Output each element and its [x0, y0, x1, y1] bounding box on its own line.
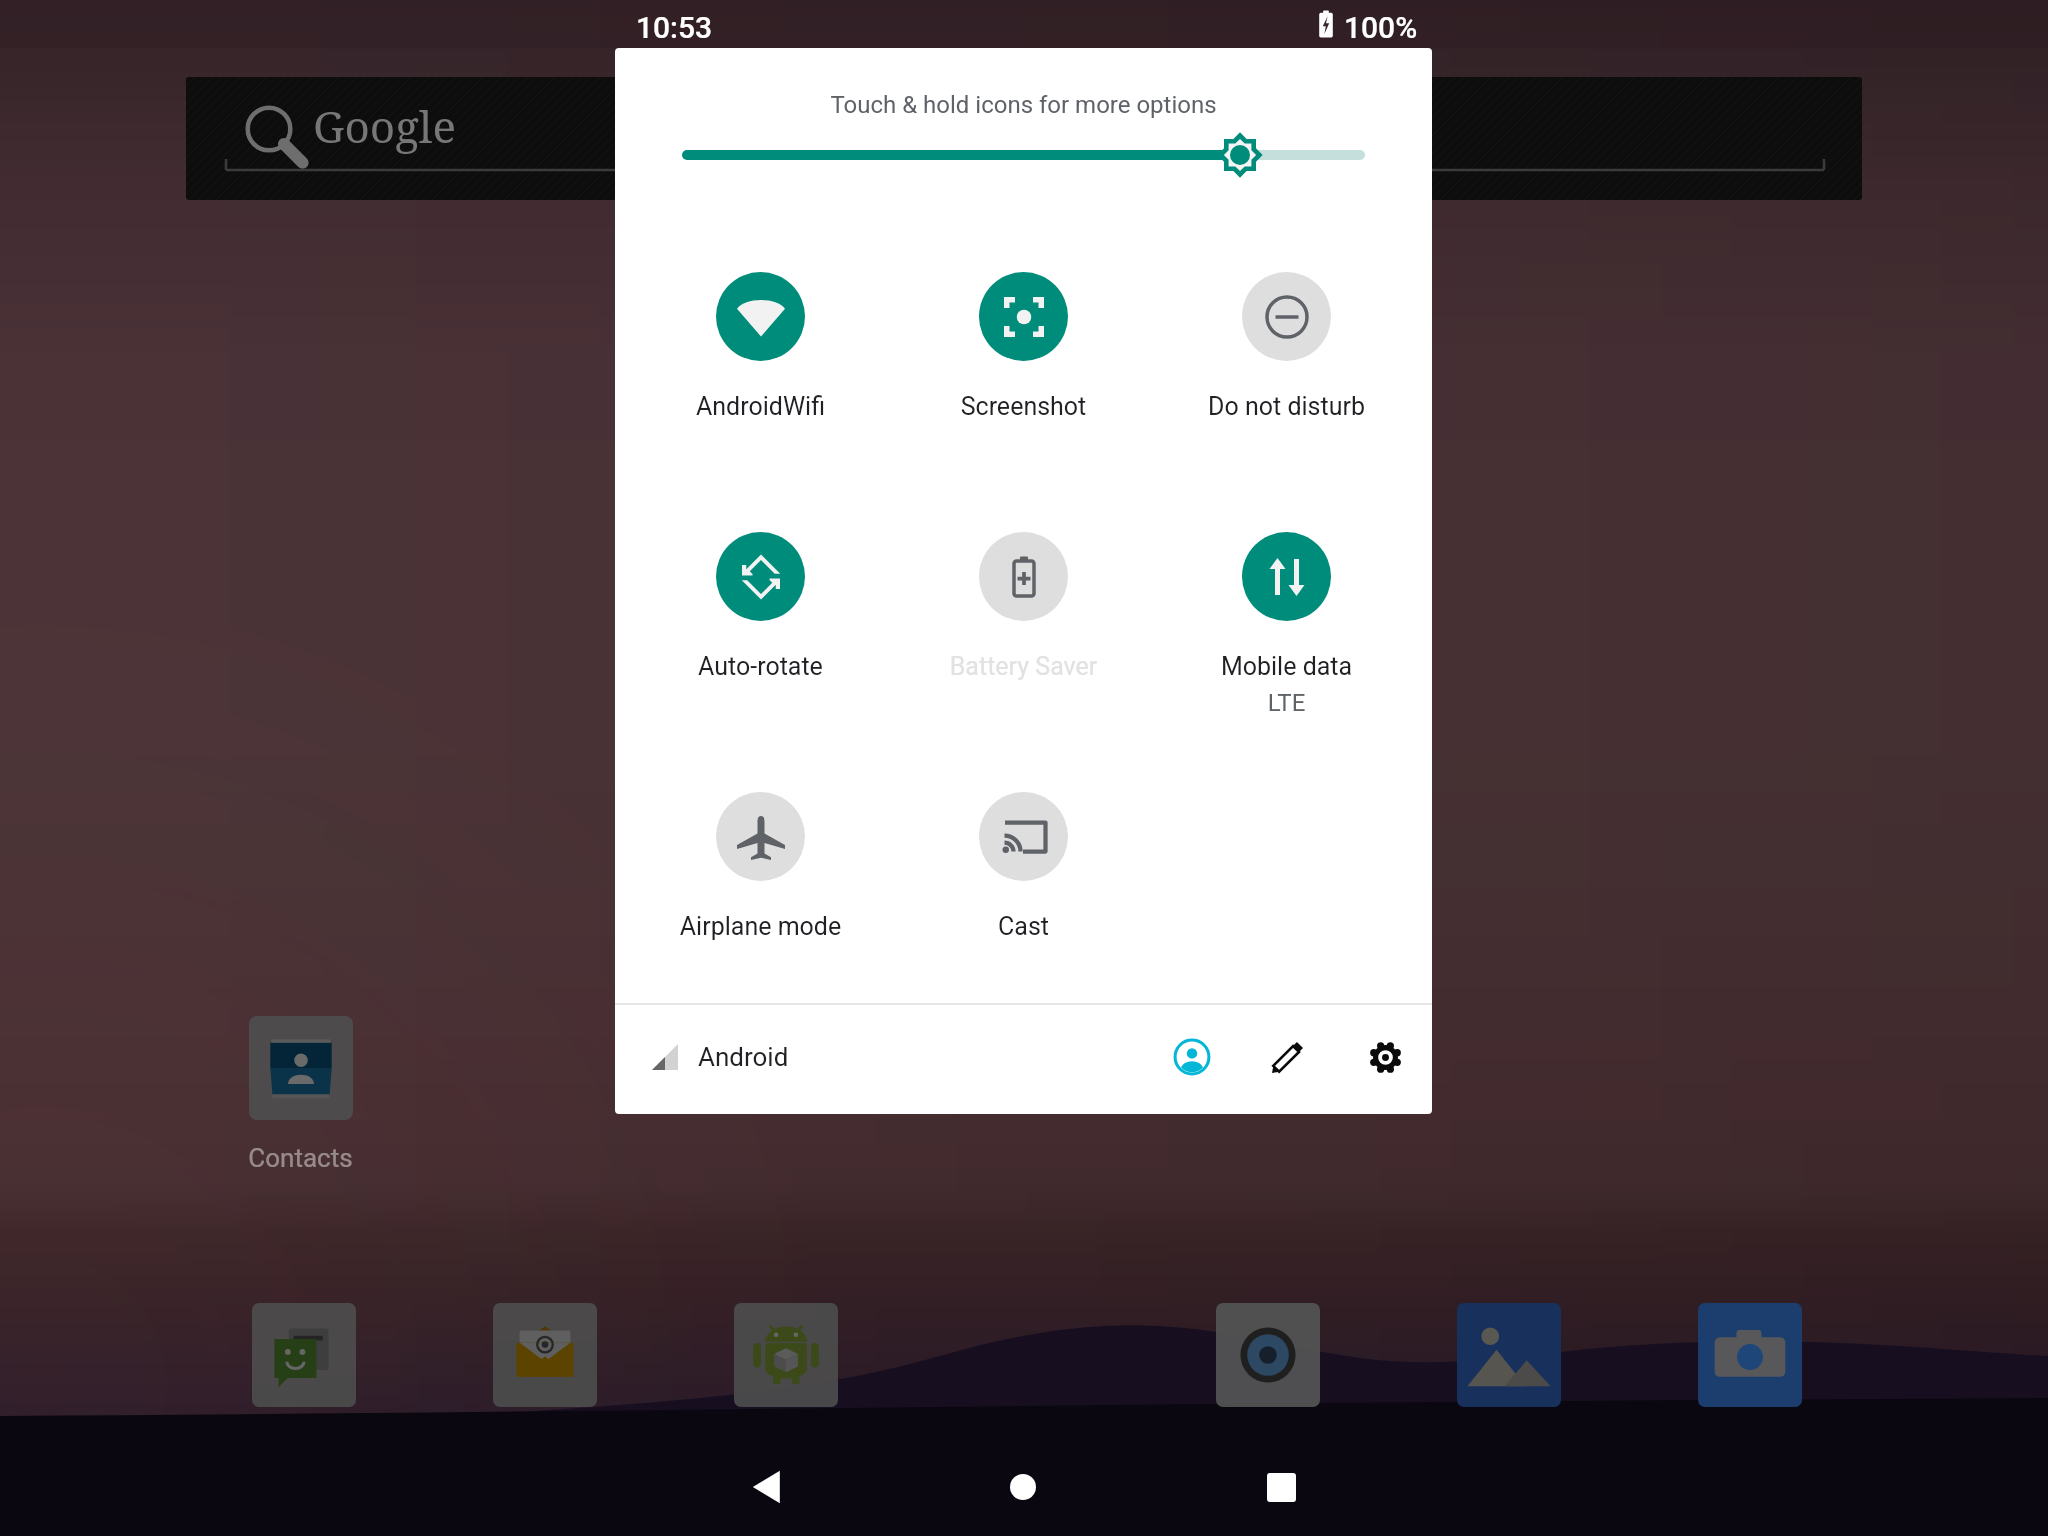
- button[interactable]: Screenshot: [892, 272, 1155, 421]
- staticText: Mobile data: [1155, 652, 1418, 681]
- button[interactable]: Do not disturb: [1155, 272, 1418, 421]
- button[interactable]: Settings: [1356, 1028, 1414, 1086]
- button[interactable]: Home: [967, 1431, 1079, 1536]
- staticText: AndroidWifi: [629, 392, 892, 421]
- button[interactable]: Photos: [1457, 1303, 1561, 1407]
- staticText: LTE: [1155, 689, 1418, 717]
- button[interactable]: Google search: [186, 77, 1862, 200]
- button[interactable]: Battery Saver: [892, 532, 1155, 681]
- button[interactable]: Cast: [892, 792, 1155, 941]
- staticText: Android: [698, 1042, 789, 1072]
- button[interactable]: User: [1163, 1028, 1221, 1086]
- staticText: Do not disturb: [1155, 392, 1418, 421]
- button[interactable]: Contacts: [249, 1016, 353, 1120]
- staticText: Contacts: [222, 1143, 379, 1173]
- staticText: Screenshot: [892, 392, 1155, 421]
- button[interactable]: Camera: [1216, 1303, 1320, 1407]
- staticText: Google: [313, 96, 457, 156]
- button[interactable]: Email: [493, 1303, 597, 1407]
- staticText: Battery Saver: [892, 652, 1155, 681]
- button[interactable]: Back: [710, 1431, 822, 1536]
- button[interactable]: AndroidWifi: [629, 272, 892, 421]
- staticText: 10:53: [636, 10, 713, 45]
- button[interactable]: Edit: [1258, 1028, 1316, 1086]
- staticText: 100%: [1344, 10, 1418, 45]
- button[interactable]: Camera app: [1698, 1303, 1802, 1407]
- button[interactable]: Apps: [734, 1303, 838, 1407]
- button[interactable]: Messages: [252, 1303, 356, 1407]
- button[interactable]: Auto-rotate: [629, 532, 892, 681]
- staticText: Touch & hold icons for more options: [830, 91, 1217, 119]
- staticText: Cast: [892, 912, 1155, 941]
- button[interactable]: Recents: [1225, 1431, 1337, 1536]
- staticText: Auto-rotate: [629, 652, 892, 681]
- button[interactable]: Airplane mode: [629, 792, 892, 941]
- staticText: Airplane mode: [629, 912, 892, 941]
- button[interactable]: Mobile data: [1155, 532, 1418, 717]
